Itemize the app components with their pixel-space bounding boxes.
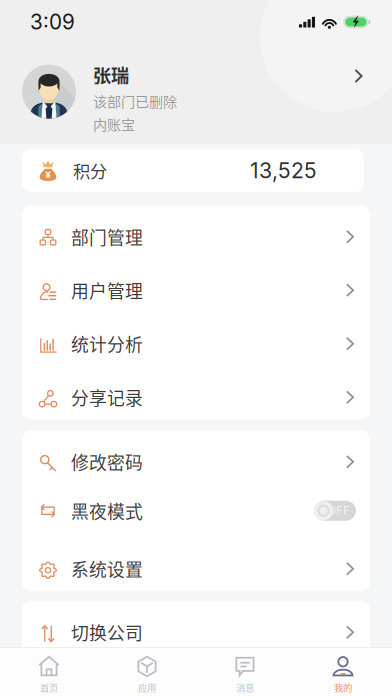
staticText: 我的 <box>334 681 352 694</box>
button[interactable]: 消息 <box>196 647 294 696</box>
button[interactable]: 统计分析 <box>22 312 370 366</box>
button[interactable]: 黑夜模式 <box>22 484 370 537</box>
staticText: 部门管理 <box>71 224 143 250</box>
staticText: 系统设置 <box>71 556 143 582</box>
staticText: 13,525 <box>250 158 317 183</box>
staticText: 分享记录 <box>71 384 143 410</box>
staticText: 积分 <box>73 158 107 183</box>
button[interactable]: 应用 <box>98 647 196 696</box>
button[interactable]: 系统设置 <box>22 537 370 591</box>
staticText: 内账宝 <box>93 113 135 134</box>
staticText: OFF <box>327 503 350 518</box>
staticText: 黑夜模式 <box>71 498 143 524</box>
button[interactable]: 修改密码 <box>22 430 370 484</box>
staticText: 张瑞 <box>93 61 129 88</box>
button[interactable]: 张瑞 <box>0 44 392 144</box>
staticText: 用户管理 <box>71 277 143 303</box>
staticText: 切换公司 <box>71 619 143 645</box>
staticText: 统计分析 <box>71 331 143 357</box>
button[interactable]: 切换公司 <box>22 601 370 654</box>
staticText: 修改密码 <box>71 449 143 475</box>
button[interactable]: 部门管理 <box>22 205 370 259</box>
button[interactable]: 我的 <box>294 647 392 696</box>
staticText: 应用 <box>138 681 156 694</box>
button[interactable]: 用户管理 <box>22 259 370 312</box>
staticText: 消息 <box>236 681 254 694</box>
button[interactable]: 分享记录 <box>22 366 370 419</box>
staticText: 3:09 <box>30 9 75 34</box>
staticText: 该部门已删除 <box>93 90 177 111</box>
button[interactable]: 首页 <box>0 647 98 696</box>
button[interactable]: 积分 <box>22 149 364 192</box>
staticText: 首页 <box>40 681 58 694</box>
